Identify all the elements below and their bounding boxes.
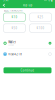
staticText: $50 [11, 26, 17, 30]
staticText: $10 [11, 15, 17, 19]
button[interactable]: Back [2, 3, 7, 8]
button[interactable]: $10 [3, 13, 25, 22]
staticText: 9:41 [3, 0, 10, 2]
staticText: Visa 4218 [8, 52, 22, 56]
staticText: $100 [37, 26, 45, 30]
button[interactable]: $100 [30, 24, 52, 32]
staticText: $25 [38, 15, 44, 19]
staticText: Continue [20, 69, 34, 72]
staticText: Wallet [8, 40, 16, 44]
staticText: Top up [22, 3, 32, 7]
button[interactable]: $50 [3, 24, 25, 32]
button[interactable]: Visa 4218 [0, 49, 55, 59]
staticText: SELECT AMOUNT [3, 9, 22, 12]
staticText: ıll ᯤ ▮ [44, 0, 52, 2]
button[interactable]: $25 [30, 13, 52, 22]
button[interactable]: Continue [3, 67, 51, 73]
button[interactable]: Wallet [0, 38, 55, 48]
staticText: $235.80 [8, 44, 14, 46]
